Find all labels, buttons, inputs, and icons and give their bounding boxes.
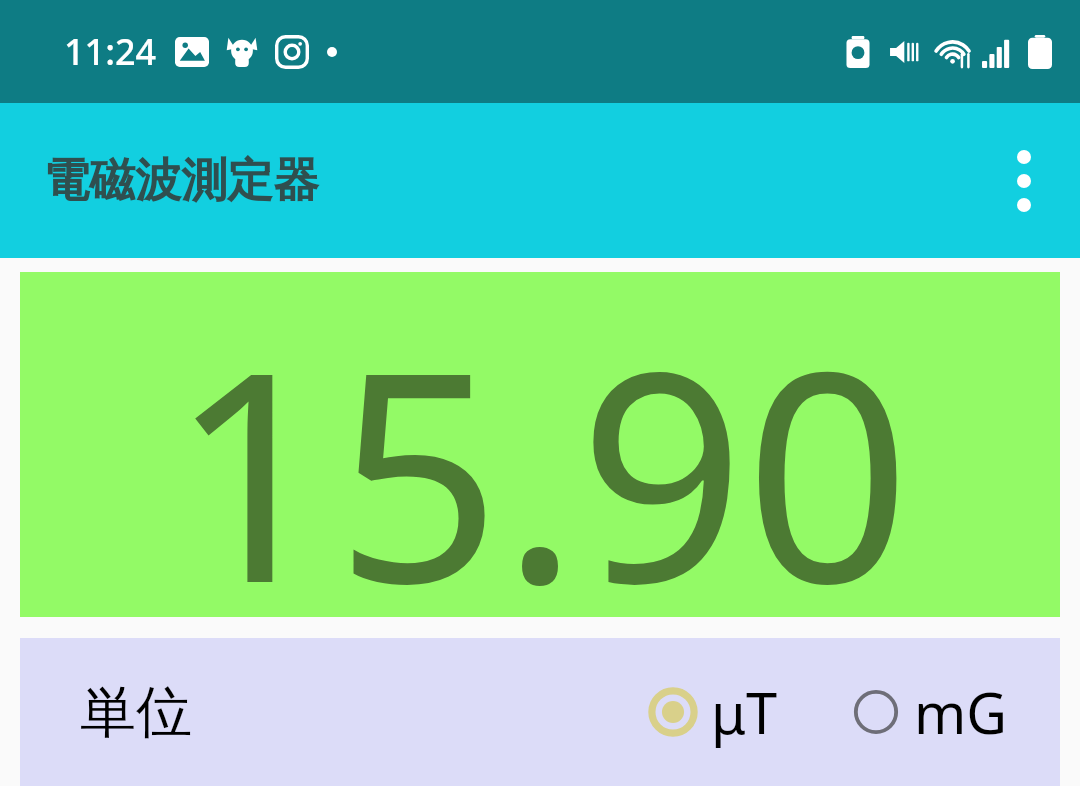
staticText: 電磁波測定器 [43,152,319,210]
staticText: 11:24 [64,27,157,76]
staticText: μT [711,674,778,750]
staticText: mG [914,674,1008,750]
button[interactable]: mG [848,666,1012,758]
staticText: 15.90 [169,272,911,617]
staticText: 単位 [80,677,192,748]
button[interactable]: 15.90 [20,272,1060,617]
button[interactable]: More options [982,139,1066,223]
button[interactable]: μT [645,666,782,758]
